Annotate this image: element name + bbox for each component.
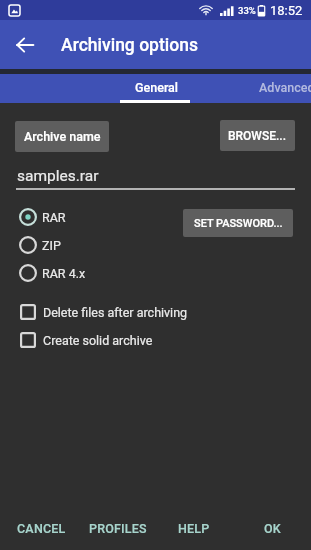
staticText: CANCEL [17,521,66,536]
staticText: Create solid archive [43,333,153,348]
staticText: Advanced [259,80,311,95]
staticText: PROFILES [89,521,147,536]
button[interactable]: Delete files after archiving [20,298,270,326]
staticText: ZIP [42,238,61,253]
staticText: HELP [178,521,210,536]
button[interactable]: General [120,74,190,103]
staticText: SET PASSWORD... [194,217,283,230]
button[interactable]: Advanced [244,74,311,103]
staticText: RAR 4.x [42,266,86,281]
staticText: Delete files after archiving [43,305,188,320]
staticText: General [135,80,179,95]
button[interactable]: RAR [19,203,159,231]
button[interactable]: Archive name [15,121,109,152]
button[interactable]: CANCEL [10,506,72,550]
button[interactable]: PROFILES [85,506,151,550]
staticText: samples.rar [17,167,99,185]
staticText: BROWSE... [228,129,287,143]
button[interactable]: SET PASSWORD... [183,209,293,237]
button[interactable]: OK [256,506,289,550]
button[interactable]: Create solid archive [20,326,270,354]
staticText: Archive name [24,129,101,144]
button[interactable]: HELP [172,506,216,550]
button[interactable]: ZIP [19,231,159,259]
staticText: Archiving options [61,35,199,56]
button[interactable]: samples.rar [16,160,295,190]
staticText: OK [264,521,281,536]
staticText: 33% [238,5,256,16]
staticText: RAR [42,210,66,225]
button[interactable]: Back [12,32,38,58]
button[interactable]: RAR 4.x [19,259,159,287]
button[interactable]: BROWSE... [220,120,295,151]
staticText: 18:52 [270,3,303,18]
